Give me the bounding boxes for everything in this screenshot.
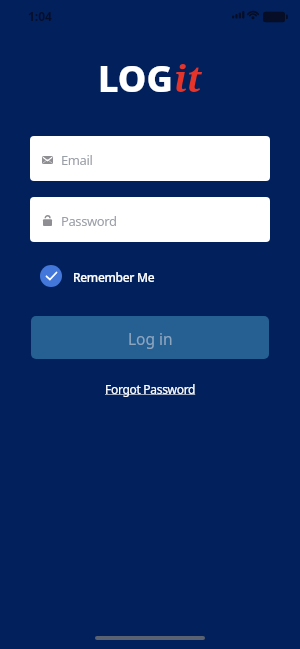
staticText: Log in xyxy=(128,328,173,349)
staticText: Password xyxy=(61,212,117,230)
button[interactable]: Log in xyxy=(31,316,269,359)
staticText: Remember Me xyxy=(73,269,155,285)
staticText: LOG xyxy=(98,54,173,103)
staticText: 1:04 xyxy=(28,8,52,24)
staticText: Email xyxy=(61,151,93,169)
button[interactable]: Remember Me xyxy=(40,265,155,287)
button[interactable]: Email xyxy=(30,136,270,181)
staticText: it xyxy=(174,54,202,103)
button[interactable]: Password xyxy=(30,197,270,242)
button[interactable]: Forgot Password xyxy=(105,381,196,397)
